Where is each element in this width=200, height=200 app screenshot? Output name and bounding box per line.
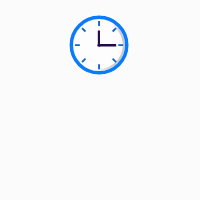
button[interactable]: Clock, three o'clock <box>69 15 129 75</box>
